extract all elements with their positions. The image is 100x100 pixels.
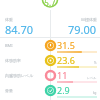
staticText: 84.70 (5, 22, 34, 37)
button[interactable]: 目標体重 (50, 17, 100, 37)
button[interactable]: Score gauge (37, 0, 63, 8)
button[interactable]: 内臓脂肪レベル (0, 68, 100, 83)
staticText: 2.9 (57, 84, 70, 96)
staticText: 体重 (5, 17, 13, 22)
staticText: 11 (57, 69, 68, 81)
staticText: BMI (5, 43, 13, 48)
staticText: 79.00 (68, 22, 97, 37)
staticText: 目標体重 (81, 17, 97, 22)
staticText: 23.6 (57, 54, 75, 66)
button[interactable]: 体脂肪率 (0, 53, 100, 68)
staticText: 31.5 (57, 39, 75, 51)
staticText: 5.7 (44, 0, 56, 8)
staticText: 内臓脂肪レベル (5, 73, 34, 78)
staticText: 骨量 (5, 88, 13, 93)
staticText: 体脂肪率 (5, 58, 21, 63)
staticText: % (94, 61, 97, 65)
button[interactable]: 体重 (0, 17, 50, 37)
button[interactable]: 骨量 (0, 83, 100, 98)
button[interactable]: BMI (0, 38, 100, 53)
staticText: kg (93, 91, 97, 95)
staticText: レベル (87, 76, 97, 80)
